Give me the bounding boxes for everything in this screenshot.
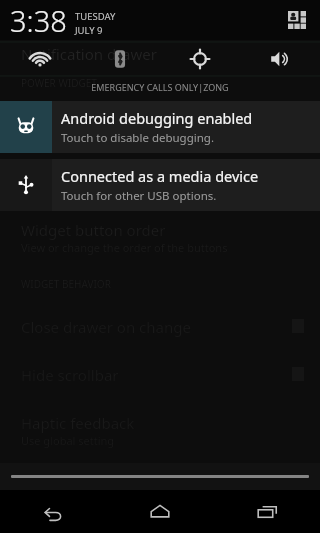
button[interactable]: Home: [106, 490, 213, 533]
staticText: JULY 9: [75, 24, 103, 37]
button[interactable]: Android debugging enabled: [0, 101, 320, 153]
button[interactable]: Back: [0, 490, 106, 533]
button[interactable]: Wi-Fi: [0, 40, 80, 77]
staticText: EMERGENCY CALLS ONLY|ZONG: [91, 81, 229, 93]
button[interactable]: Connected as a media device: [0, 159, 320, 211]
staticText: Touch for other USB options.: [61, 188, 217, 204]
button[interactable]: Bluetooth: [80, 40, 160, 77]
staticText: Widget button order: [21, 220, 166, 240]
staticText: WIDGET BEHAVIOR: [21, 277, 111, 291]
staticText: Notification drawer: [21, 44, 157, 64]
staticText: 3:38: [10, 1, 67, 40]
button[interactable]: Location: [160, 40, 240, 77]
button[interactable]: Close notification shade: [0, 463, 320, 490]
staticText: TUESDAY: [75, 10, 116, 23]
button[interactable]: Volume: [240, 40, 320, 77]
staticText: Android debugging enabled: [61, 108, 253, 128]
button[interactable]: Recents: [213, 490, 320, 533]
staticText: Connected as a media device: [61, 166, 259, 186]
staticText: POWER WIDGET: [21, 76, 97, 90]
staticText: Touch to disable debugging.: [61, 130, 214, 146]
button[interactable]: Quick settings: [282, 5, 312, 35]
staticText: Widget buttons: [21, 176, 130, 196]
